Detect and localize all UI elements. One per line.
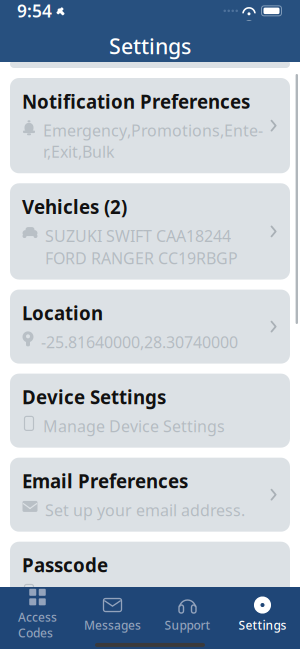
button[interactable]: Settings [0, 26, 300, 66]
staticText: Support [164, 617, 210, 633]
staticText: Location [22, 301, 103, 325]
staticText: Settings [109, 32, 191, 60]
staticText: Require passcode when generating [43, 583, 223, 626]
staticText: Set up your email address. [45, 499, 245, 521]
button[interactable]: Notification Preferences [10, 78, 290, 173]
button[interactable]: Device Settings [10, 374, 290, 448]
staticText: access codes? [43, 627, 149, 648]
staticText: Passcode [22, 553, 108, 577]
button[interactable]: Access Codes [0, 582, 75, 643]
staticText: -25.81640000,28.30740000 [41, 331, 238, 353]
staticText: SUZUKI SWIFT CAA18244 [45, 225, 231, 246]
staticText: Manage Device Settings [43, 415, 225, 437]
staticText: Device Settings [22, 385, 166, 409]
button[interactable]: Email Preferences [10, 458, 290, 532]
button[interactable]: Settings [225, 590, 300, 635]
button[interactable]: Support [150, 590, 225, 635]
staticText: Notification Preferences [22, 89, 250, 114]
button[interactable]: Location [10, 290, 290, 364]
staticText: Messages [84, 617, 141, 633]
staticText: Access Codes [18, 609, 57, 641]
staticText: Vehicles (2) [22, 194, 127, 219]
staticText: 9:54 [17, 0, 52, 22]
staticText: Email Preferences [22, 469, 188, 493]
staticText: Emergency,Promotions,Enter,Exit,Bulk [43, 120, 263, 162]
button[interactable]: Require passcode toggle [241, 590, 278, 611]
staticText: Settings [238, 617, 286, 633]
staticText: FORD RANGER CC19RBGP [45, 247, 238, 268]
button[interactable]: Passcode [10, 542, 290, 649]
button[interactable]: Vehicles (2) [10, 183, 290, 280]
button[interactable]: Messages [75, 590, 150, 635]
